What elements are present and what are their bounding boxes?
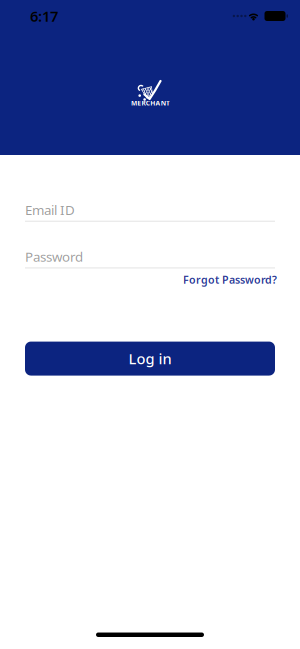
staticText: Forgot Password? xyxy=(183,272,277,287)
button[interactable]: Email ID xyxy=(25,201,275,222)
button[interactable]: Password xyxy=(25,248,275,268)
button[interactable]: Forgot Password? xyxy=(181,272,275,287)
staticText: Log in xyxy=(128,349,171,368)
staticText: 6:17 xyxy=(30,6,58,26)
button[interactable]: Log in xyxy=(25,342,275,376)
staticText: MERCHANT xyxy=(131,98,170,107)
staticText: Password xyxy=(25,248,83,265)
staticText: Email ID xyxy=(25,201,75,219)
